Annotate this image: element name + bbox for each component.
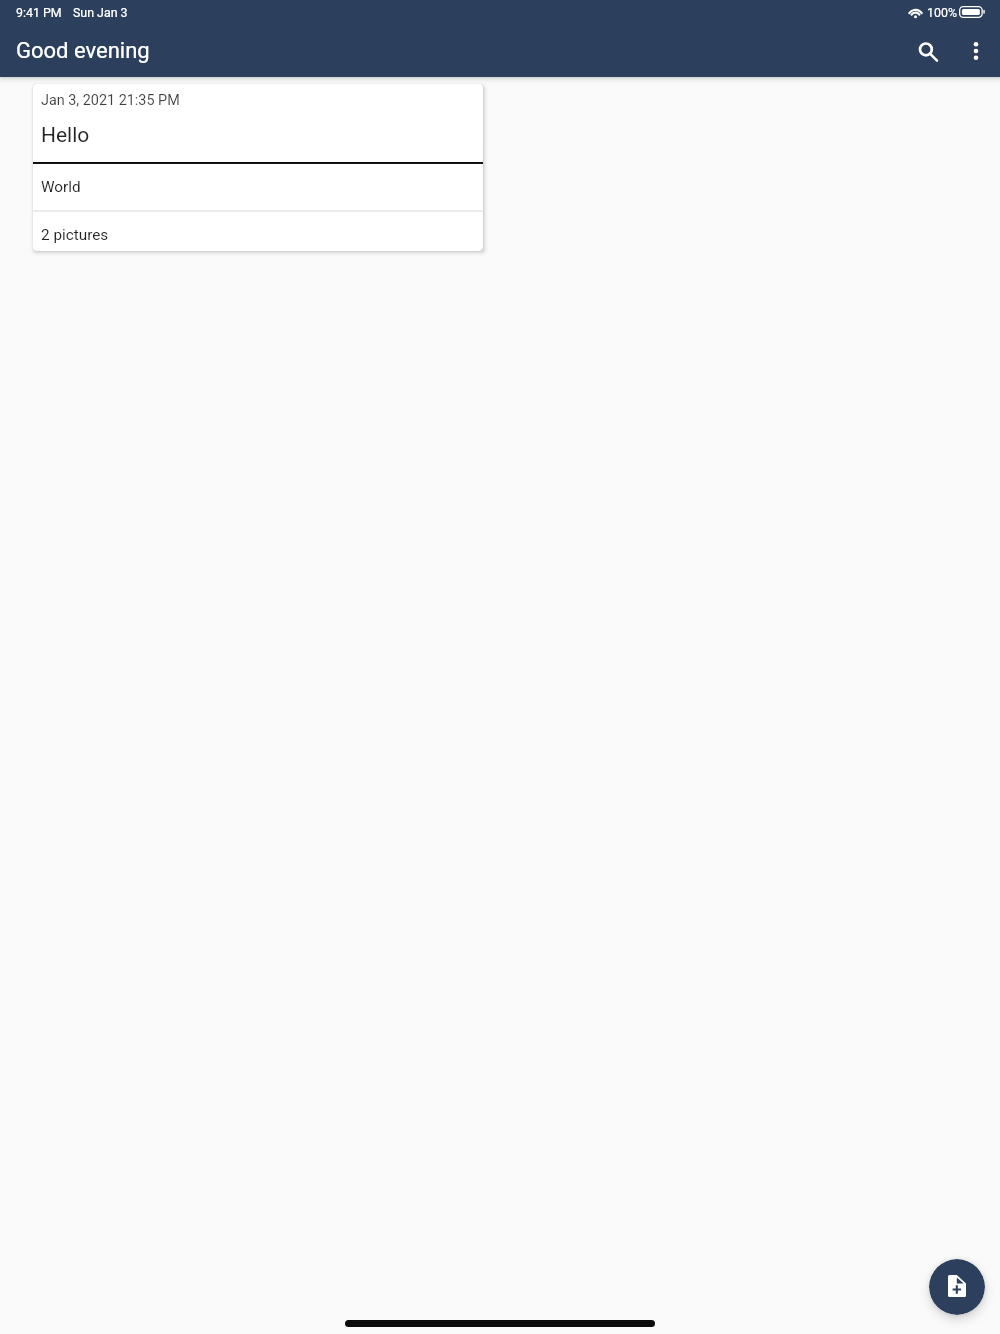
staticText: World: [41, 178, 81, 196]
button[interactable]: Jan 3, 2021 21:35 PM: [33, 84, 483, 162]
staticText: 9:41 PM: [16, 5, 62, 20]
staticText: Sun Jan 3: [73, 5, 128, 20]
staticText: Good evening: [16, 38, 150, 64]
button[interactable]: 2 pictures: [33, 212, 483, 251]
button[interactable]: Search: [904, 27, 952, 75]
button[interactable]: World: [33, 164, 483, 210]
staticText: 2 pictures: [41, 226, 109, 244]
button[interactable]: New note: [929, 1259, 985, 1315]
staticText: Hello: [41, 123, 90, 148]
button[interactable]: More options: [952, 27, 1000, 75]
staticText: Jan 3, 2021 21:35 PM: [41, 92, 180, 109]
staticText: 100%: [927, 5, 957, 20]
